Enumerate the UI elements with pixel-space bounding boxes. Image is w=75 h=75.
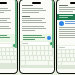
button[interactable]: Send (13, 44, 16, 47)
button[interactable]: Send (50, 42, 53, 45)
button[interactable] (57, 14, 75, 20)
button[interactable]: Send (0, 43, 17, 47)
button[interactable]: New chat (47, 36, 51, 40)
button[interactable] (59, 21, 75, 26)
button[interactable] (22, 34, 52, 41)
button[interactable] (0, 34, 15, 42)
button[interactable]: Send (57, 45, 75, 49)
button[interactable]: Send (20, 41, 54, 45)
